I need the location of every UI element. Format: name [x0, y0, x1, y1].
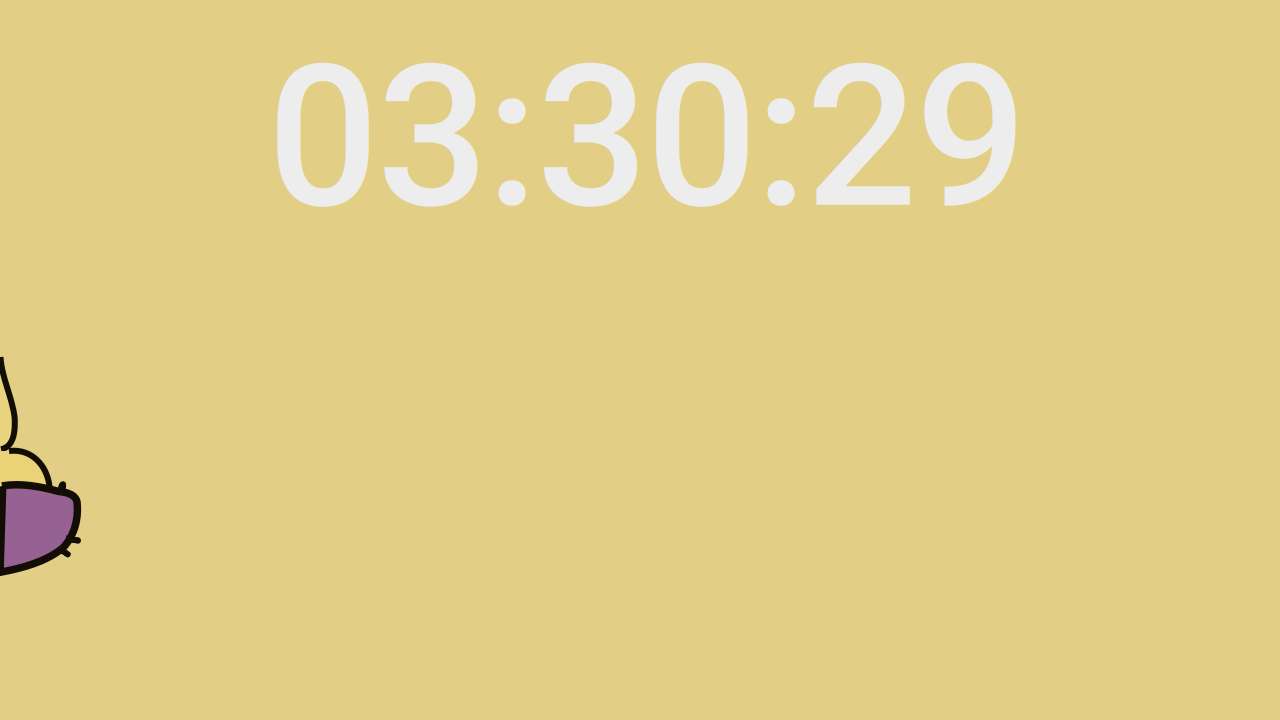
- staticText: 03:30:29: [268, 23, 1026, 253]
